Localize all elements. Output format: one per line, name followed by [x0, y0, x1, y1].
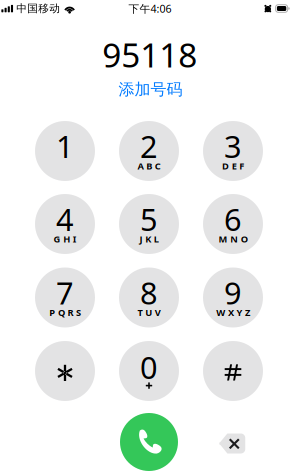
staticText: 添加号码	[118, 80, 182, 99]
staticText: GHI	[54, 233, 77, 245]
staticText: 0	[140, 347, 158, 387]
button[interactable]: Delete	[213, 427, 251, 459]
button[interactable]: 7	[35, 267, 95, 327]
staticText: DEF	[222, 160, 244, 172]
button[interactable]: 4	[35, 194, 95, 254]
staticText: 5	[140, 199, 158, 239]
button[interactable]: 5	[119, 194, 179, 254]
staticText: 8	[140, 272, 158, 313]
staticText: ABC	[138, 160, 161, 172]
staticText: 下午4:06	[128, 1, 171, 16]
staticText: JKL	[140, 233, 159, 245]
button[interactable]: Call	[120, 413, 178, 471]
staticText: PQRS	[49, 306, 81, 318]
button[interactable]: 1	[35, 121, 95, 181]
button[interactable]: 3	[203, 121, 263, 181]
staticText: 9	[224, 272, 242, 313]
staticText: 3	[224, 126, 242, 166]
staticText: 1	[56, 126, 74, 166]
staticText: 4	[56, 199, 74, 239]
button[interactable]: 9	[203, 267, 263, 327]
button[interactable]: 添加号码	[110, 77, 190, 102]
button[interactable]: 8	[119, 267, 179, 327]
staticText: 7	[56, 272, 74, 313]
staticText: 中国移动	[16, 2, 60, 15]
button[interactable]: 6	[203, 194, 263, 254]
staticText: MNO	[219, 233, 248, 245]
button[interactable]: 0	[119, 341, 179, 401]
staticText: WXYZ	[216, 306, 250, 318]
button[interactable]: 2	[119, 121, 179, 181]
staticText: TUV	[138, 306, 161, 318]
staticText: 2	[140, 126, 158, 166]
staticText: 6	[224, 199, 242, 239]
staticText: 95118	[102, 32, 197, 77]
button[interactable]	[35, 341, 95, 401]
button[interactable]	[203, 341, 263, 401]
